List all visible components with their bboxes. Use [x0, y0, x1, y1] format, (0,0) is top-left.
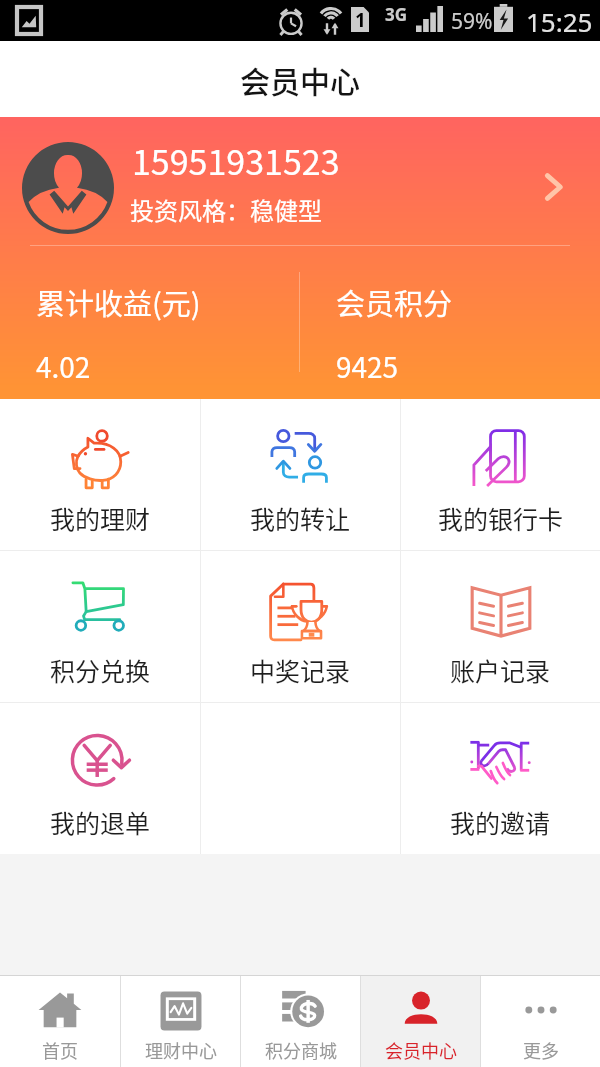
button[interactable]: 账户记录: [401, 551, 600, 702]
staticText: 会员中心: [385, 1037, 457, 1063]
staticText: 积分兑换: [50, 652, 151, 688]
staticText: 我的理财: [50, 500, 151, 536]
staticText: 1: [355, 7, 366, 32]
staticText: 投资风格：稳健型: [130, 192, 322, 227]
staticText: 首页: [42, 1037, 78, 1063]
staticText: 我的银行卡: [438, 500, 564, 536]
button[interactable]: 中奖记录: [201, 551, 400, 702]
button[interactable]: 会员中心: [361, 976, 480, 1067]
button[interactable]: 更多: [481, 976, 600, 1067]
staticText: 会员中心: [240, 58, 360, 101]
other: Profile details: [536, 168, 574, 206]
staticText: 积分商城: [265, 1037, 337, 1063]
staticText: 4.02: [36, 346, 91, 387]
button[interactable]: 积分商城: [241, 976, 360, 1067]
staticText: 3G: [385, 3, 408, 26]
staticText: 会员积分: [336, 281, 453, 323]
staticText: 15:25: [526, 4, 593, 39]
staticText: 我的退单: [50, 804, 151, 840]
staticText: 中奖记录: [250, 652, 351, 688]
button[interactable]: 我的理财: [0, 399, 200, 550]
button[interactable]: 我的邀请: [401, 703, 600, 854]
staticText: 我的转让: [250, 500, 351, 536]
staticText: 59%: [451, 7, 493, 36]
staticText: 我的邀请: [450, 804, 551, 840]
staticText: 理财中心: [145, 1037, 217, 1063]
staticText: 15951931523: [132, 136, 340, 185]
button[interactable]: 首页: [0, 976, 120, 1067]
staticText: 账户记录: [450, 652, 551, 688]
staticText: 累计收益(元): [36, 281, 201, 323]
staticText: 9425: [336, 346, 399, 387]
staticText: 更多: [523, 1037, 559, 1063]
button[interactable]: 我的退单: [0, 703, 200, 854]
button[interactable]: 积分兑换: [0, 551, 200, 702]
button[interactable]: 我的转让: [201, 399, 400, 550]
button[interactable]: 15951931523: [0, 117, 600, 247]
button[interactable]: 我的银行卡: [401, 399, 600, 550]
button[interactable]: 理财中心: [121, 976, 240, 1067]
